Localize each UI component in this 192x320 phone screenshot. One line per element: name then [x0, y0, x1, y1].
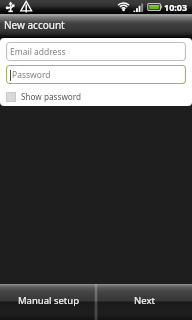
staticText: Manual setup: [18, 294, 79, 307]
staticText: Password: [12, 69, 51, 81]
button[interactable]: Show password: [6, 91, 82, 102]
staticText: Show password: [21, 91, 82, 102]
staticText: Next: [134, 294, 155, 307]
staticText: Email address: [10, 46, 66, 58]
button[interactable]: Manual setup: [0, 284, 96, 320]
button[interactable]: Next: [96, 284, 192, 320]
button[interactable]: Password: [6, 65, 186, 84]
staticText: 10:03: [164, 1, 188, 13]
button[interactable]: Email address: [6, 42, 186, 61]
staticText: New account: [4, 18, 65, 32]
